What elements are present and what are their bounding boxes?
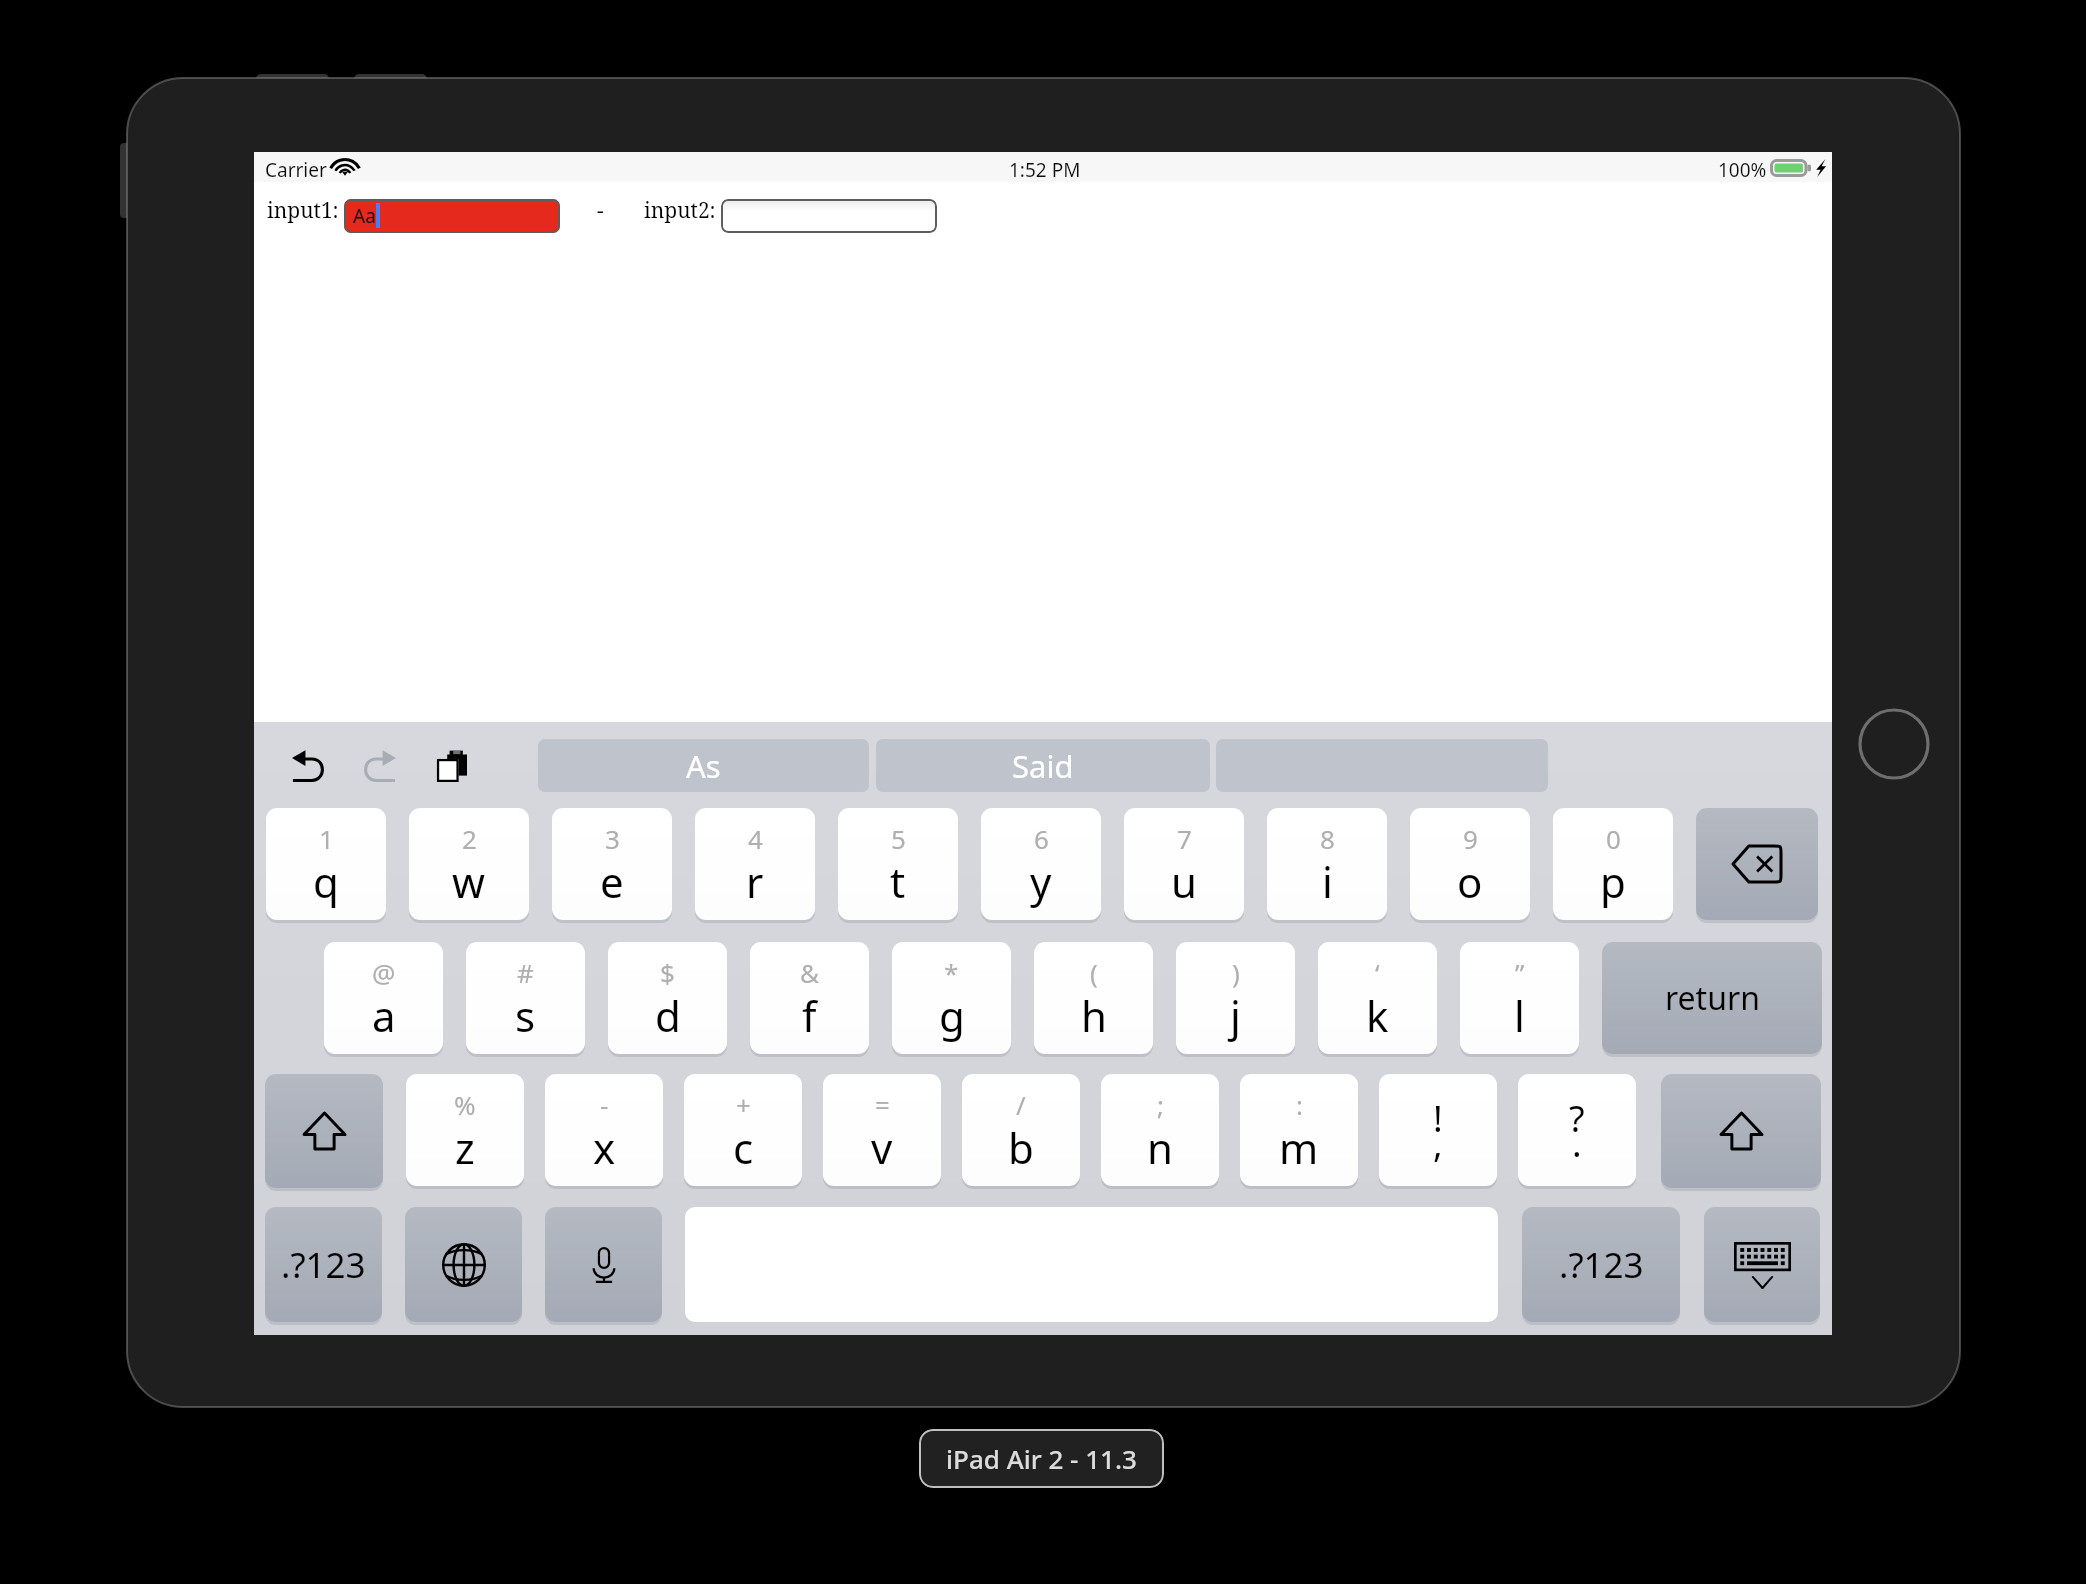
staticText: p [1600, 853, 1626, 910]
staticText: .?123 [1559, 1241, 1644, 1289]
staticText: & [800, 955, 820, 990]
button[interactable]: ) [1176, 942, 1295, 1054]
staticText: 4 [748, 821, 763, 856]
staticText: ; [1157, 1087, 1164, 1122]
button[interactable]: 7 [1124, 808, 1244, 920]
button[interactable]: ‘ [1318, 942, 1437, 1054]
staticText: q [313, 853, 339, 910]
staticText: # [517, 955, 534, 990]
staticText: Aa [353, 203, 376, 229]
staticText: 1 [319, 821, 334, 856]
staticText: 5 [891, 821, 906, 856]
button[interactable]: = [823, 1074, 941, 1186]
staticText: a [372, 987, 396, 1044]
staticText: - [597, 196, 604, 225]
staticText: = [875, 1087, 890, 1122]
button[interactable]: .?123 [265, 1207, 382, 1322]
staticText: o [1457, 853, 1483, 910]
staticText: l [1514, 987, 1525, 1044]
staticText: iPad Air 2 - 11.3 [946, 1441, 1137, 1476]
button[interactable]: * [892, 942, 1011, 1054]
staticText: k [1366, 987, 1389, 1044]
button[interactable]: $ [608, 942, 727, 1054]
button[interactable]: ; [1101, 1074, 1219, 1186]
staticText: c [733, 1119, 754, 1176]
button[interactable]: 4 [695, 808, 815, 920]
staticText: t [890, 853, 906, 910]
staticText: @ [372, 955, 396, 990]
staticText: - [600, 1087, 609, 1122]
button[interactable]: Redo [352, 739, 408, 792]
button[interactable]: 1 [266, 808, 386, 920]
staticText: g [939, 987, 965, 1044]
staticText: Carrier [265, 157, 327, 183]
staticText: s [515, 987, 536, 1044]
button[interactable]: Backspace [1696, 808, 1818, 920]
staticText: ‘ [1375, 955, 1380, 990]
button[interactable]: 5 [838, 808, 958, 920]
staticText: 7 [1177, 821, 1192, 856]
button[interactable]: & [750, 942, 869, 1054]
staticText: / [1016, 1087, 1026, 1122]
button[interactable]: % [406, 1074, 524, 1186]
staticText: x [593, 1119, 616, 1176]
staticText: 3 [605, 821, 620, 856]
staticText: input1: [267, 196, 339, 225]
button[interactable]: Next keyboard [405, 1207, 522, 1322]
button[interactable]: iPad Air 2 - 11.3 [919, 1429, 1164, 1488]
staticText: % [454, 1087, 476, 1122]
staticText: $ [660, 955, 675, 990]
button[interactable]: return [1602, 942, 1822, 1054]
button[interactable]: Shift [265, 1074, 383, 1188]
staticText: z [455, 1119, 475, 1176]
button[interactable] [721, 199, 937, 233]
button[interactable]: Aa [344, 199, 560, 233]
staticText: d [655, 987, 681, 1044]
staticText: + [736, 1087, 751, 1122]
staticText: m [1279, 1119, 1319, 1176]
staticText: r [746, 853, 764, 910]
staticText: i [1322, 853, 1333, 910]
staticText: 2 [462, 821, 477, 856]
staticText: 0 [1606, 821, 1621, 856]
staticText: , [1433, 1119, 1443, 1168]
button[interactable]: ! [1379, 1074, 1497, 1186]
staticText: return [1665, 976, 1760, 1020]
button[interactable]: 0 [1553, 808, 1673, 920]
staticText: .?123 [281, 1241, 366, 1289]
staticText: ? [1569, 1094, 1585, 1143]
button[interactable]: Paste [424, 739, 480, 792]
button[interactable]: Shift [1661, 1074, 1821, 1188]
staticText: 9 [1463, 821, 1478, 856]
button[interactable]: As [538, 739, 869, 792]
button[interactable]: Said [876, 739, 1210, 792]
button[interactable]: : [1240, 1074, 1358, 1186]
button[interactable]: 2 [409, 808, 529, 920]
button[interactable]: .?123 [1522, 1207, 1680, 1322]
staticText: 8 [1320, 821, 1335, 856]
button[interactable]: + [684, 1074, 802, 1186]
staticText: w [452, 853, 486, 910]
button[interactable]: / [962, 1074, 1080, 1186]
staticText: input2: [644, 196, 716, 225]
button[interactable]: 9 [1410, 808, 1530, 920]
button[interactable]: - [545, 1074, 663, 1186]
button[interactable]: # [466, 942, 585, 1054]
button[interactable]: ( [1034, 942, 1153, 1054]
button[interactable]: ? [1518, 1074, 1636, 1186]
staticText: f [802, 987, 817, 1044]
button[interactable]: Undo [280, 739, 336, 792]
button[interactable]: Dictation [545, 1207, 662, 1322]
staticText: y [1030, 853, 1052, 910]
button[interactable]: ” [1460, 942, 1579, 1054]
button[interactable]: 3 [552, 808, 672, 920]
button[interactable]: @ [324, 942, 443, 1054]
button[interactable]: Hide keyboard [1704, 1207, 1820, 1322]
staticText: j [1230, 987, 1241, 1044]
staticText: : [1296, 1087, 1303, 1122]
button[interactable]: 8 [1267, 808, 1387, 920]
button[interactable]: 6 [981, 808, 1101, 920]
staticText: 6 [1034, 821, 1049, 856]
